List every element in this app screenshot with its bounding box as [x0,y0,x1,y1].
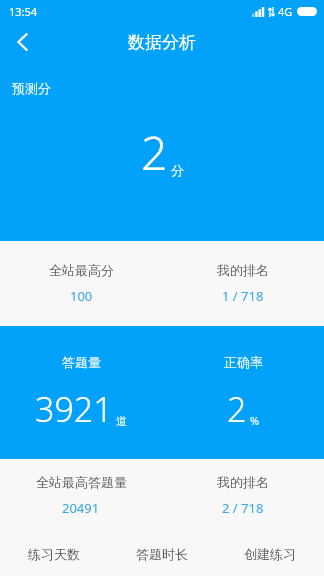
staticText: 我的排名 [217,474,269,490]
staticText: 我的排名 [217,262,269,278]
staticText: 数据分析 [128,32,196,53]
staticText: 13:54 [9,4,38,19]
staticText: 道 [116,414,127,428]
button[interactable]: 全站最高分 [0,241,162,326]
staticText: 20491 [62,499,100,517]
button[interactable]: Back [0,22,44,62]
staticText: 2 [227,386,247,432]
staticText: 4G [278,4,293,19]
staticText: 全站最高分 [49,262,114,278]
staticText: 预测分 [12,80,51,96]
button[interactable]: 全站最高答题量 [0,459,162,531]
staticText: 全站最高答题量 [36,474,127,490]
staticText: 练习天数 [28,546,80,562]
staticText: 1 / 718 [222,287,264,305]
button[interactable]: 我的排名 [162,241,324,326]
staticText: 创建练习 [244,546,296,562]
staticText: % [250,413,260,428]
staticText: 答题时长 [136,546,188,562]
button[interactable]: 创建练习 [216,531,324,576]
staticText: 100 [70,287,93,305]
button[interactable]: 我的排名 [162,459,324,531]
staticText: 分 [171,162,184,178]
button[interactable]: 答题量 [0,326,162,459]
staticText: 2 / 718 [222,499,264,517]
button[interactable]: 答题时长 [108,531,216,576]
staticText: 答题量 [62,354,101,370]
button[interactable]: 正确率 [162,326,324,459]
staticText: 3921 [35,386,113,432]
staticText: 正确率 [224,354,263,370]
staticText: 2 [141,121,168,184]
button[interactable]: 练习天数 [0,531,108,576]
